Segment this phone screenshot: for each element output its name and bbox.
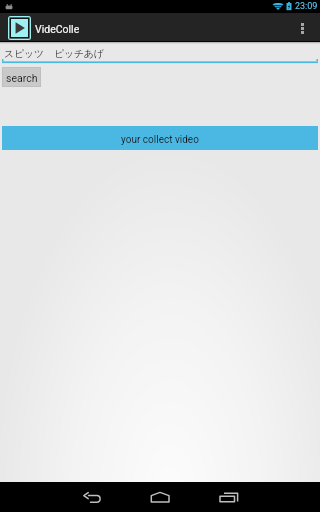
staticText: VideColle	[35, 23, 80, 35]
staticText: 23:09	[295, 1, 318, 12]
button[interactable]: search	[2, 67, 41, 87]
staticText: search	[6, 72, 38, 84]
staticText: スピッツ ピッチあげ	[4, 48, 105, 60]
button[interactable]: your collect video	[2, 126, 318, 150]
button[interactable]: More options	[290, 13, 314, 42]
button[interactable]: Back	[68, 482, 116, 512]
button[interactable]: Home	[136, 482, 184, 512]
staticText: your collect video	[121, 134, 199, 146]
button[interactable]: Recents	[204, 482, 252, 512]
